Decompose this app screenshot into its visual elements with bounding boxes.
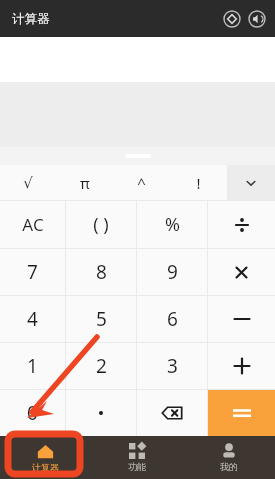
staticText: 4 <box>27 306 38 332</box>
button[interactable]: AC <box>0 201 65 248</box>
staticText: 5 <box>96 306 107 332</box>
button[interactable]: Multiply <box>208 249 275 295</box>
button[interactable]: 9 <box>137 249 207 295</box>
button[interactable]: 7 <box>0 249 65 295</box>
button[interactable]: Equals <box>208 390 275 436</box>
button[interactable]: 5 <box>66 296 136 342</box>
staticText: % <box>165 212 180 237</box>
button[interactable]: 我的 <box>183 436 275 479</box>
button[interactable]: 0 <box>0 390 65 436</box>
button[interactable]: 功能 <box>91 436 183 479</box>
button[interactable]: 6 <box>137 296 207 342</box>
staticText: 9 <box>167 259 178 285</box>
button[interactable]: Divide <box>208 201 275 248</box>
button[interactable]: ( ) <box>66 201 136 248</box>
button[interactable]: Sound <box>245 7 269 31</box>
staticText: 计算器 <box>32 462 59 473</box>
staticText: 计算器 <box>12 11 50 27</box>
staticText: π <box>80 173 90 193</box>
button[interactable]: 2 <box>66 343 136 389</box>
staticText: 7 <box>27 259 38 285</box>
button[interactable]: Theme <box>220 7 244 31</box>
button[interactable]: 1 <box>0 343 65 389</box>
button[interactable]: Minus <box>208 296 275 342</box>
button[interactable]: √ <box>0 165 56 200</box>
button[interactable]: 计算器 <box>0 436 91 479</box>
button[interactable]: 3 <box>137 343 207 389</box>
staticText: 6 <box>167 306 178 332</box>
staticText: AC <box>22 213 44 236</box>
staticText: 0 <box>27 400 38 426</box>
button[interactable]: ^ <box>113 165 170 200</box>
staticText: 3 <box>167 353 178 379</box>
staticText: ! <box>196 173 201 193</box>
button[interactable]: Plus <box>208 343 275 389</box>
button[interactable]: Backspace <box>137 390 207 436</box>
staticText: 8 <box>96 259 107 285</box>
button[interactable]: ! <box>170 165 227 200</box>
button[interactable]: More functions <box>227 165 275 200</box>
button[interactable]: 4 <box>0 296 65 342</box>
staticText: √ <box>23 174 33 191</box>
staticText: 我的 <box>220 461 238 472</box>
staticText: 1 <box>27 353 38 379</box>
staticText: 2 <box>96 353 107 379</box>
button[interactable]: 8 <box>66 249 136 295</box>
staticText: ^ <box>137 173 146 193</box>
staticText: 功能 <box>128 461 146 472</box>
staticText: ( ) <box>93 212 109 237</box>
button[interactable]: % <box>137 201 207 248</box>
button[interactable]: π <box>56 165 113 200</box>
button[interactable] <box>66 390 136 436</box>
